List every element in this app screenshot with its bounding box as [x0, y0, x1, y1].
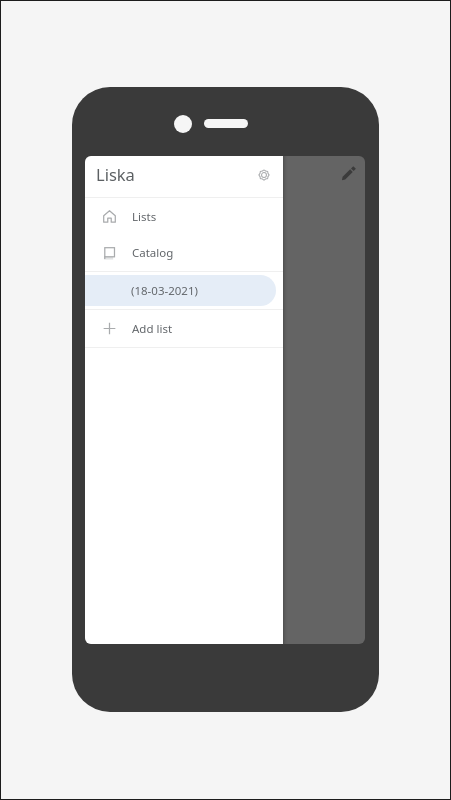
staticText: Liska [96, 163, 135, 185]
staticText: Catalog [132, 245, 174, 261]
staticText: Lists [132, 209, 157, 225]
button[interactable]: Catalog [85, 235, 283, 271]
staticText: (18-03-2021) [131, 283, 198, 299]
button[interactable]: (18-03-2021) [85, 275, 276, 306]
button[interactable]: Add list [85, 310, 283, 347]
staticText: Add list [132, 321, 173, 337]
button[interactable]: Settings [252, 163, 276, 187]
button[interactable]: Lists [85, 198, 283, 235]
button[interactable]: Edit [333, 158, 364, 189]
